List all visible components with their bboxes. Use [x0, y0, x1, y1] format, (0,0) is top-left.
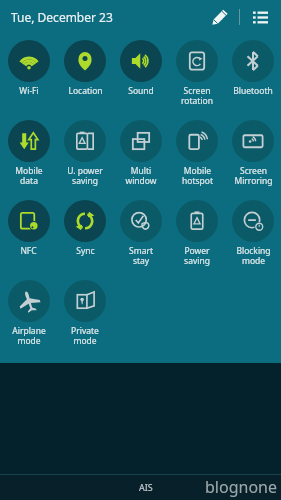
staticText: blognone	[205, 476, 277, 498]
button[interactable]: List	[247, 4, 273, 30]
button[interactable]: NFC	[0, 198, 57, 257]
staticText: Multi window	[125, 165, 157, 186]
staticText: Mobile hotspot	[182, 165, 213, 186]
staticText: NFC	[20, 245, 37, 257]
staticText: Tue, December 23	[11, 9, 113, 25]
staticText: Mobile data	[15, 165, 43, 186]
staticText: Sound	[128, 85, 154, 97]
staticText: Location	[68, 85, 103, 97]
button[interactable]: U. power saving	[57, 118, 113, 186]
button[interactable]: Sound	[113, 38, 169, 97]
button[interactable]: Sync	[57, 198, 113, 257]
button[interactable]: Private mode	[57, 278, 113, 346]
button[interactable]: Bluetooth	[225, 38, 281, 97]
staticText: Sync	[76, 245, 95, 257]
staticText: U. power saving	[67, 165, 103, 186]
button[interactable]: Edit	[207, 4, 233, 30]
button[interactable]: Mobile hotspot	[169, 118, 225, 186]
staticText: Bluetooth	[233, 85, 273, 97]
button[interactable]: Smart stay	[113, 198, 169, 266]
button[interactable]: Power saving	[169, 198, 225, 266]
staticText: Private mode	[71, 325, 99, 346]
staticText: Screen Mirroring	[234, 165, 273, 186]
button[interactable]: Mobile data	[0, 118, 57, 186]
staticText: AIS	[139, 481, 153, 493]
button[interactable]: Multi window	[113, 118, 169, 186]
staticText: Screen rotation	[181, 85, 213, 106]
staticText: Wi-Fi	[19, 85, 39, 97]
staticText: Power saving	[184, 245, 210, 266]
staticText: Airplane mode	[12, 325, 46, 346]
staticText: Smart stay	[129, 245, 153, 266]
button[interactable]: Wi-Fi	[0, 38, 57, 97]
button[interactable]: Screen Mirroring	[225, 118, 281, 186]
button[interactable]: Blocking mode	[225, 198, 281, 266]
button[interactable]: Airplane mode	[0, 278, 57, 346]
staticText: Blocking mode	[236, 245, 271, 266]
button[interactable]: Screen rotation	[169, 38, 225, 106]
button[interactable]: Location	[57, 38, 113, 97]
